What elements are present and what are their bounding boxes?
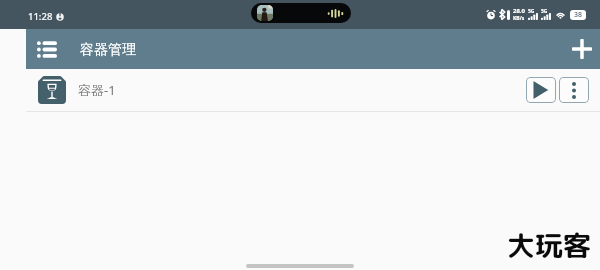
staticText: KB/s [513, 15, 525, 22]
button[interactable]: Start [526, 77, 556, 103]
button[interactable]: Add [568, 35, 596, 63]
staticText: 11:28 [28, 10, 53, 23]
button[interactable]: 容器-1 [0, 69, 600, 111]
staticText: 大玩客 [507, 226, 592, 265]
staticText: 容器管理 [80, 41, 136, 59]
staticText: 5G [541, 8, 548, 15]
staticText: 28.0 [513, 7, 525, 15]
staticText: 5G [528, 8, 535, 15]
staticText: 容器-1 [78, 81, 116, 99]
staticText: 38 [574, 10, 583, 20]
button[interactable]: Menu [33, 32, 61, 66]
button[interactable]: More options [559, 77, 589, 103]
